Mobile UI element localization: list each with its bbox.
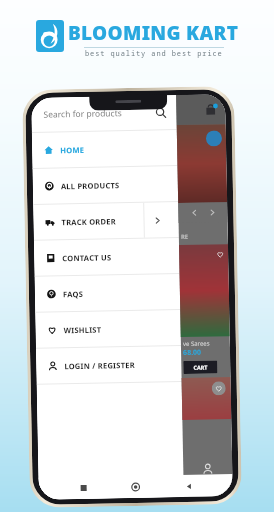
button[interactable]: Back: [180, 478, 197, 494]
button[interactable]: Recent apps: [75, 480, 92, 496]
staticText: HOME: [60, 145, 85, 155]
button[interactable]: Home: [127, 479, 144, 495]
button[interactable]: WISHLIST: [35, 310, 181, 348]
staticText: WISHLIST: [63, 325, 102, 335]
button[interactable]: CONTACT US: [34, 238, 179, 276]
staticText: ALL PRODUCTS: [61, 180, 120, 191]
button[interactable]: LOGIN / REGISTER: [36, 346, 182, 384]
other: Wishlist: [216, 250, 224, 258]
other: Expand: [153, 216, 162, 225]
staticText: Search for products: [43, 107, 123, 121]
staticText: BLOOMING KART: [68, 20, 239, 46]
staticText: TRACK ORDER: [61, 216, 117, 227]
staticText: LOGIN / REGISTER: [64, 360, 135, 371]
button[interactable]: Search for products: [31, 95, 177, 132]
other: Wishlist: [215, 384, 223, 392]
button[interactable]: Offer: [206, 130, 222, 146]
button[interactable]: TRACK ORDER: [33, 202, 179, 240]
staticText: 68.00: [183, 348, 201, 358]
button[interactable]: HOME: [32, 130, 177, 168]
staticText: FAQS: [63, 289, 84, 299]
staticText: ve Sarees: [183, 339, 210, 348]
button[interactable]: ALL PRODUCTS: [32, 166, 178, 204]
staticText: best quality and best price: [85, 49, 223, 59]
other: Search: [155, 107, 167, 118]
button[interactable]: Cart: [205, 103, 217, 115]
staticText: CONTACT US: [62, 252, 112, 263]
other: Previous: [190, 209, 198, 217]
button[interactable]: CART: [183, 360, 217, 374]
staticText: RE: [181, 233, 189, 241]
button[interactable]: FAQS: [35, 274, 180, 312]
staticText: CART: [193, 363, 208, 371]
other: Next: [208, 208, 216, 217]
